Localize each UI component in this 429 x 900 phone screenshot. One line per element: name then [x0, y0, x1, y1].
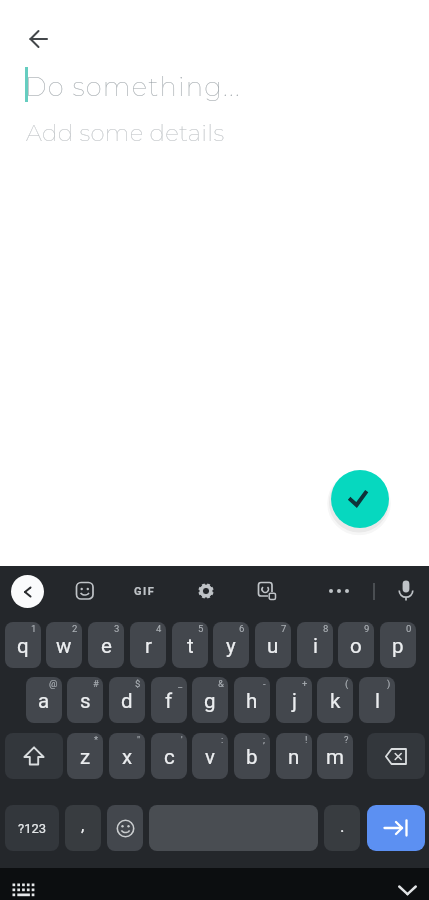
staticText: 4 — [156, 623, 162, 634]
staticText: j — [292, 689, 297, 713]
button[interactable] — [367, 805, 425, 851]
staticText: Do something... — [25, 71, 241, 103]
button[interactable] — [149, 805, 318, 851]
staticText: g — [204, 689, 216, 713]
staticText: d — [121, 689, 133, 713]
button[interactable]: y — [213, 622, 249, 668]
button[interactable]: l — [359, 677, 395, 723]
staticText: i — [313, 634, 318, 658]
button[interactable] — [396, 579, 416, 603]
button[interactable]: i — [297, 622, 333, 668]
button[interactable]: m — [317, 733, 353, 779]
button[interactable]: z — [67, 733, 103, 779]
button[interactable]: k — [317, 677, 353, 723]
staticText: p — [392, 634, 404, 658]
staticText: c — [164, 745, 175, 769]
staticText: 1 — [31, 623, 37, 634]
staticText: 8 — [323, 623, 329, 634]
staticText: l — [375, 689, 380, 713]
button[interactable]: w — [46, 622, 82, 668]
staticText: e — [101, 634, 112, 658]
button[interactable] — [107, 805, 143, 851]
staticText: 9 — [364, 623, 370, 634]
button[interactable]: a — [26, 677, 62, 723]
button[interactable]: p — [380, 622, 416, 668]
staticText: u — [267, 634, 279, 658]
button[interactable] — [18, 19, 58, 59]
staticText: 3 — [114, 623, 120, 634]
button[interactable] — [331, 470, 389, 528]
staticText: 2 — [72, 623, 78, 634]
staticText: ?123 — [18, 821, 47, 836]
staticText: 6 — [239, 623, 245, 634]
staticText: , — [81, 815, 85, 835]
staticText: 7 — [281, 623, 287, 634]
staticText: f — [165, 689, 173, 713]
staticText: . — [340, 816, 345, 836]
button[interactable]: h — [234, 677, 270, 723]
staticText: s — [80, 689, 91, 713]
staticText: ) — [387, 678, 391, 689]
staticText: 5 — [198, 623, 204, 634]
staticText: m — [326, 745, 344, 769]
staticText: - — [263, 678, 266, 689]
staticText: w — [56, 634, 72, 658]
button[interactable] — [75, 581, 95, 601]
staticText: ; — [263, 734, 266, 745]
button[interactable]: . — [324, 805, 360, 851]
staticText: _ — [178, 678, 183, 689]
button[interactable]: s — [67, 677, 103, 723]
staticText: GIF — [134, 585, 156, 598]
button[interactable]: x — [109, 733, 145, 779]
staticText: : — [221, 734, 224, 745]
staticText: * — [94, 734, 99, 745]
staticText: 0 — [406, 623, 412, 634]
staticText: $ — [135, 678, 141, 689]
button[interactable]: q — [5, 622, 41, 668]
staticText: v — [205, 745, 215, 769]
button[interactable]: t — [172, 622, 208, 668]
staticText: ( — [345, 678, 349, 689]
button[interactable]: v — [192, 733, 228, 779]
staticText: & — [218, 678, 224, 689]
button[interactable]: ?123 — [5, 805, 59, 851]
button[interactable]: j — [276, 677, 312, 723]
staticText: # — [93, 678, 99, 689]
button[interactable]: n — [276, 733, 312, 779]
button[interactable] — [257, 581, 277, 601]
button[interactable]: d — [109, 677, 145, 723]
staticText: @ — [49, 678, 58, 689]
staticText: o — [350, 634, 362, 658]
staticText: + — [302, 678, 308, 689]
staticText: q — [17, 634, 29, 658]
staticText: n — [288, 745, 300, 769]
button[interactable]: b — [234, 733, 270, 779]
staticText: a — [38, 689, 50, 713]
staticText: x — [122, 745, 133, 769]
button[interactable]: r — [130, 622, 166, 668]
button[interactable] — [394, 880, 420, 900]
button[interactable]: e — [88, 622, 124, 668]
button[interactable] — [11, 575, 44, 608]
button[interactable]: f — [151, 677, 187, 723]
staticText: ' — [181, 734, 183, 745]
button[interactable]: g — [192, 677, 228, 723]
staticText: " — [137, 734, 141, 745]
button[interactable]: u — [255, 622, 291, 668]
button[interactable] — [367, 733, 425, 779]
staticText: ! — [305, 734, 308, 745]
button[interactable]: , — [65, 805, 101, 851]
button[interactable]: GIF — [128, 582, 162, 600]
staticText: ? — [344, 734, 349, 745]
staticText: t — [187, 634, 194, 658]
button[interactable]: c — [151, 733, 187, 779]
button[interactable]: o — [338, 622, 374, 668]
staticText: k — [330, 689, 341, 713]
staticText: h — [246, 689, 258, 713]
button[interactable] — [5, 733, 63, 779]
staticText: b — [246, 745, 258, 769]
staticText: z — [80, 745, 91, 769]
staticText: Add some details — [26, 119, 225, 147]
button[interactable] — [196, 581, 216, 601]
staticText: r — [145, 634, 152, 658]
